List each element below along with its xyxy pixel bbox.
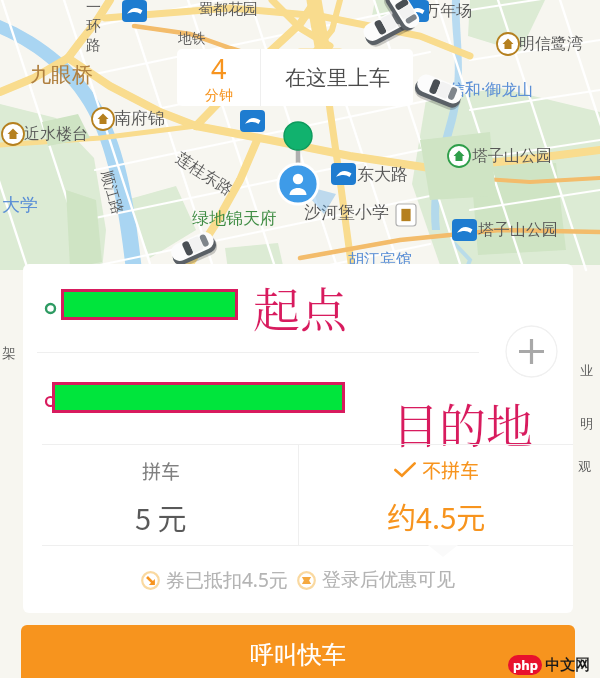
staticText: 近水楼台 <box>24 124 88 144</box>
staticText: 万年场 <box>424 1 472 21</box>
staticText: 蜀都花园 <box>198 0 258 19</box>
staticText: 地铁 <box>178 30 206 48</box>
staticText: 信和·御龙山 <box>449 78 534 100</box>
staticText: 目的地 <box>392 389 533 457</box>
staticText: 起点 <box>253 273 347 341</box>
staticText: php <box>513 656 538 674</box>
staticText: 大学 <box>2 194 38 217</box>
button[interactable]: 拼车 <box>23 445 298 545</box>
staticText: 4 <box>211 50 227 87</box>
button[interactable]: 呼叫快车 <box>21 625 575 678</box>
staticText: 东大路 <box>357 164 408 185</box>
staticText: 架 <box>2 345 16 363</box>
button[interactable]: Add stop <box>505 325 558 378</box>
staticText: 绿地锦天府 <box>192 208 277 229</box>
staticText: 明 <box>580 415 593 431</box>
staticText: 业 <box>580 362 593 378</box>
staticText: 不拼车 <box>422 456 480 484</box>
staticText: 路 <box>86 36 101 55</box>
staticText: 南府锦 <box>114 108 165 129</box>
staticText: 九眼桥 <box>30 62 93 88</box>
staticText: 塔子山公园 <box>472 146 552 166</box>
staticText: 券已抵扣4.5元 <box>166 567 288 593</box>
staticText: 在这里上车 <box>285 65 390 91</box>
staticText: 明信鹭湾 <box>519 34 583 54</box>
staticText: 胡江宾馆 <box>348 250 412 270</box>
staticText: 分钟 <box>205 87 233 105</box>
button[interactable]: 不拼车 <box>299 445 573 545</box>
staticText: 顺江路 <box>96 168 127 217</box>
staticText: 观 <box>578 458 591 474</box>
staticText: 环 <box>86 17 101 36</box>
staticText: 沙河堡小学 <box>304 202 389 223</box>
staticText: 约4.5元 <box>387 495 486 537</box>
staticText: 登录后优惠可见 <box>322 568 455 592</box>
staticText: 一 <box>86 0 101 17</box>
staticText: 拼车 <box>142 457 181 485</box>
staticText: 5 元 <box>135 496 187 538</box>
staticText: 莲桂东路 <box>172 148 236 200</box>
staticText: 塔子山公园 <box>478 220 558 240</box>
staticText: 中文网 <box>545 656 590 675</box>
staticText: 呼叫快车 <box>250 640 346 670</box>
button[interactable]: 4 <box>177 49 413 106</box>
